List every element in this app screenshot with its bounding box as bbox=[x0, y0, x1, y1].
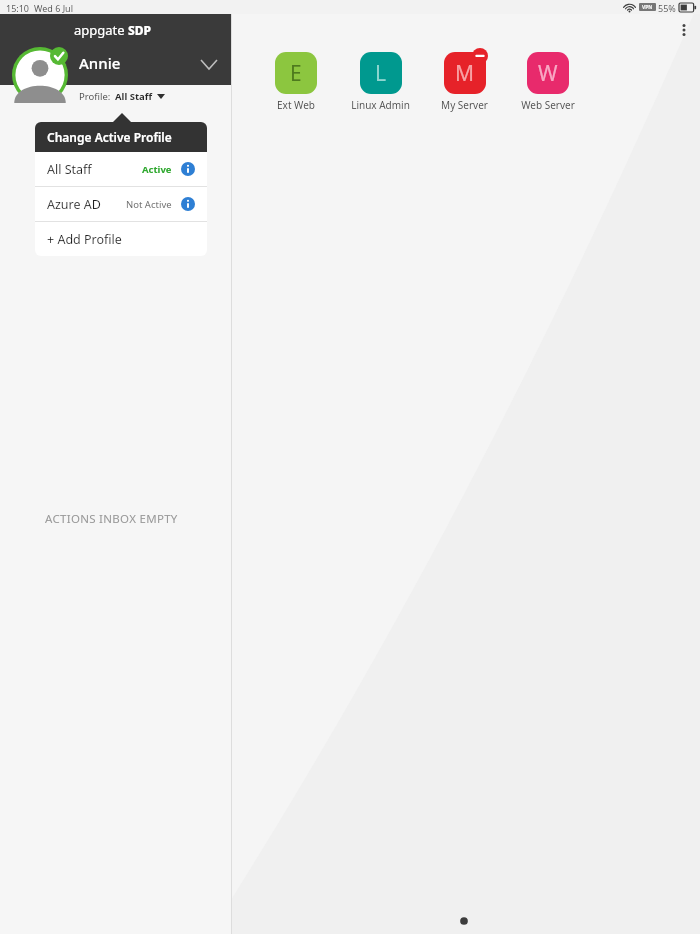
staticText: Change Active Profile bbox=[47, 129, 172, 145]
staticText: Azure AD bbox=[47, 196, 101, 213]
button[interactable]: More options bbox=[668, 14, 700, 46]
staticText: VPN bbox=[642, 4, 653, 11]
staticText: SDP bbox=[128, 22, 152, 38]
staticText: Profile: bbox=[79, 90, 111, 103]
button[interactable]: E bbox=[254, 48, 338, 112]
staticText: Web Server bbox=[521, 98, 575, 112]
staticText: ACTIONS INBOX EMPTY bbox=[45, 511, 178, 527]
staticText: Active bbox=[142, 163, 172, 176]
staticText: appgate bbox=[74, 21, 125, 39]
button[interactable]: Expand account bbox=[192, 47, 226, 81]
staticText: E bbox=[290, 59, 302, 88]
button[interactable]: + Add Profile bbox=[35, 222, 207, 256]
staticText: 55% bbox=[658, 2, 676, 14]
button[interactable]: All Staff bbox=[35, 152, 207, 186]
button[interactable]: Profile info bbox=[181, 197, 195, 211]
staticText: L bbox=[375, 59, 387, 88]
staticText: 15:10 bbox=[6, 2, 30, 14]
staticText: Wed 6 Jul bbox=[34, 2, 73, 14]
staticText: My Server bbox=[441, 98, 488, 112]
staticText: Ext Web bbox=[277, 98, 315, 112]
button[interactable]: Profile info bbox=[181, 162, 195, 176]
staticText: Not Active bbox=[126, 198, 172, 211]
button[interactable]: L bbox=[338, 48, 422, 112]
staticText: M bbox=[455, 59, 475, 88]
staticText: Linux Admin bbox=[351, 98, 410, 112]
button[interactable]: W bbox=[506, 48, 590, 112]
button[interactable]: M bbox=[422, 48, 506, 112]
staticText: Annie bbox=[79, 53, 121, 73]
staticText: All Staff bbox=[47, 161, 92, 178]
staticText: All Staff bbox=[115, 90, 153, 103]
button[interactable]: Azure AD bbox=[35, 187, 207, 221]
staticText: W bbox=[538, 59, 558, 88]
button[interactable]: Profile: bbox=[79, 88, 165, 104]
staticText: + Add Profile bbox=[47, 231, 122, 248]
